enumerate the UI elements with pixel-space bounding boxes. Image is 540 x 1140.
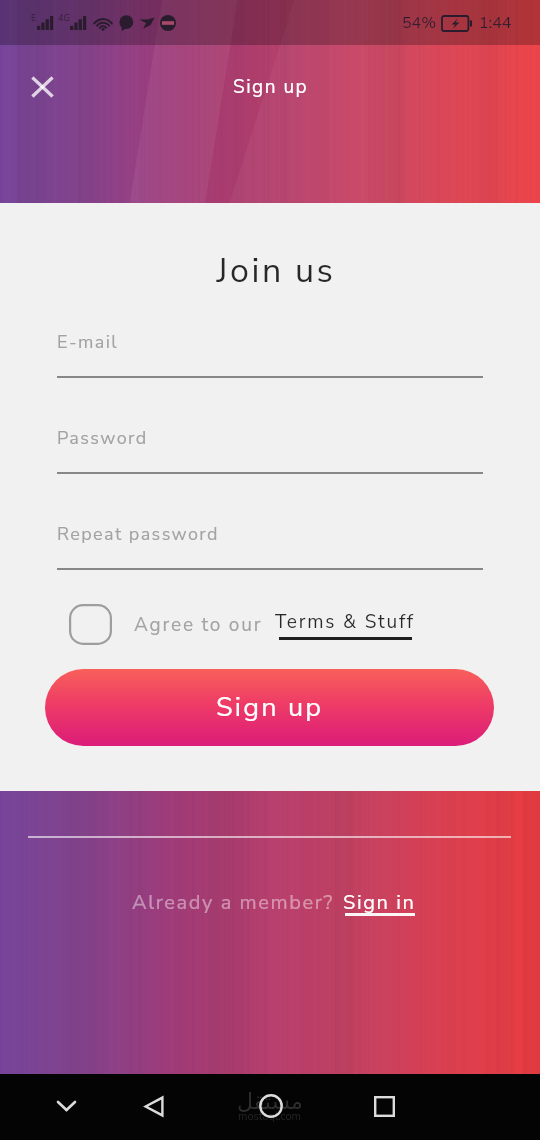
staticText: مستقل (237, 1089, 303, 1115)
button[interactable]: Recent apps (360, 1082, 408, 1130)
staticText: mostaql.com (238, 1109, 302, 1124)
staticText: E (31, 12, 37, 24)
staticText: Join us (6, 248, 540, 294)
staticText: Sign up (233, 74, 309, 100)
staticText: Sign in (343, 889, 416, 916)
staticText: 1:44 (479, 12, 512, 34)
staticText: Already a member? (132, 889, 334, 916)
staticText: 4G (58, 12, 70, 24)
button[interactable]: Hide keyboard (42, 1082, 90, 1130)
button[interactable]: Agree to our terms checkbox (69, 604, 112, 645)
staticText: Agree to our (134, 612, 263, 638)
button[interactable]: Back (130, 1082, 178, 1130)
button[interactable]: Sign up (45, 669, 494, 746)
button[interactable]: Close (19, 64, 65, 110)
staticText: Terms & Stuff (275, 609, 415, 635)
staticText: E-mail (57, 330, 118, 355)
button[interactable]: Sign in (343, 889, 416, 928)
staticText: 54% (402, 12, 437, 34)
staticText: Password (57, 426, 148, 451)
staticText: Sign up (216, 689, 324, 726)
button[interactable]: Home (247, 1082, 295, 1130)
staticText: Repeat password (57, 522, 219, 547)
button[interactable]: Terms & Stuff (275, 609, 415, 640)
